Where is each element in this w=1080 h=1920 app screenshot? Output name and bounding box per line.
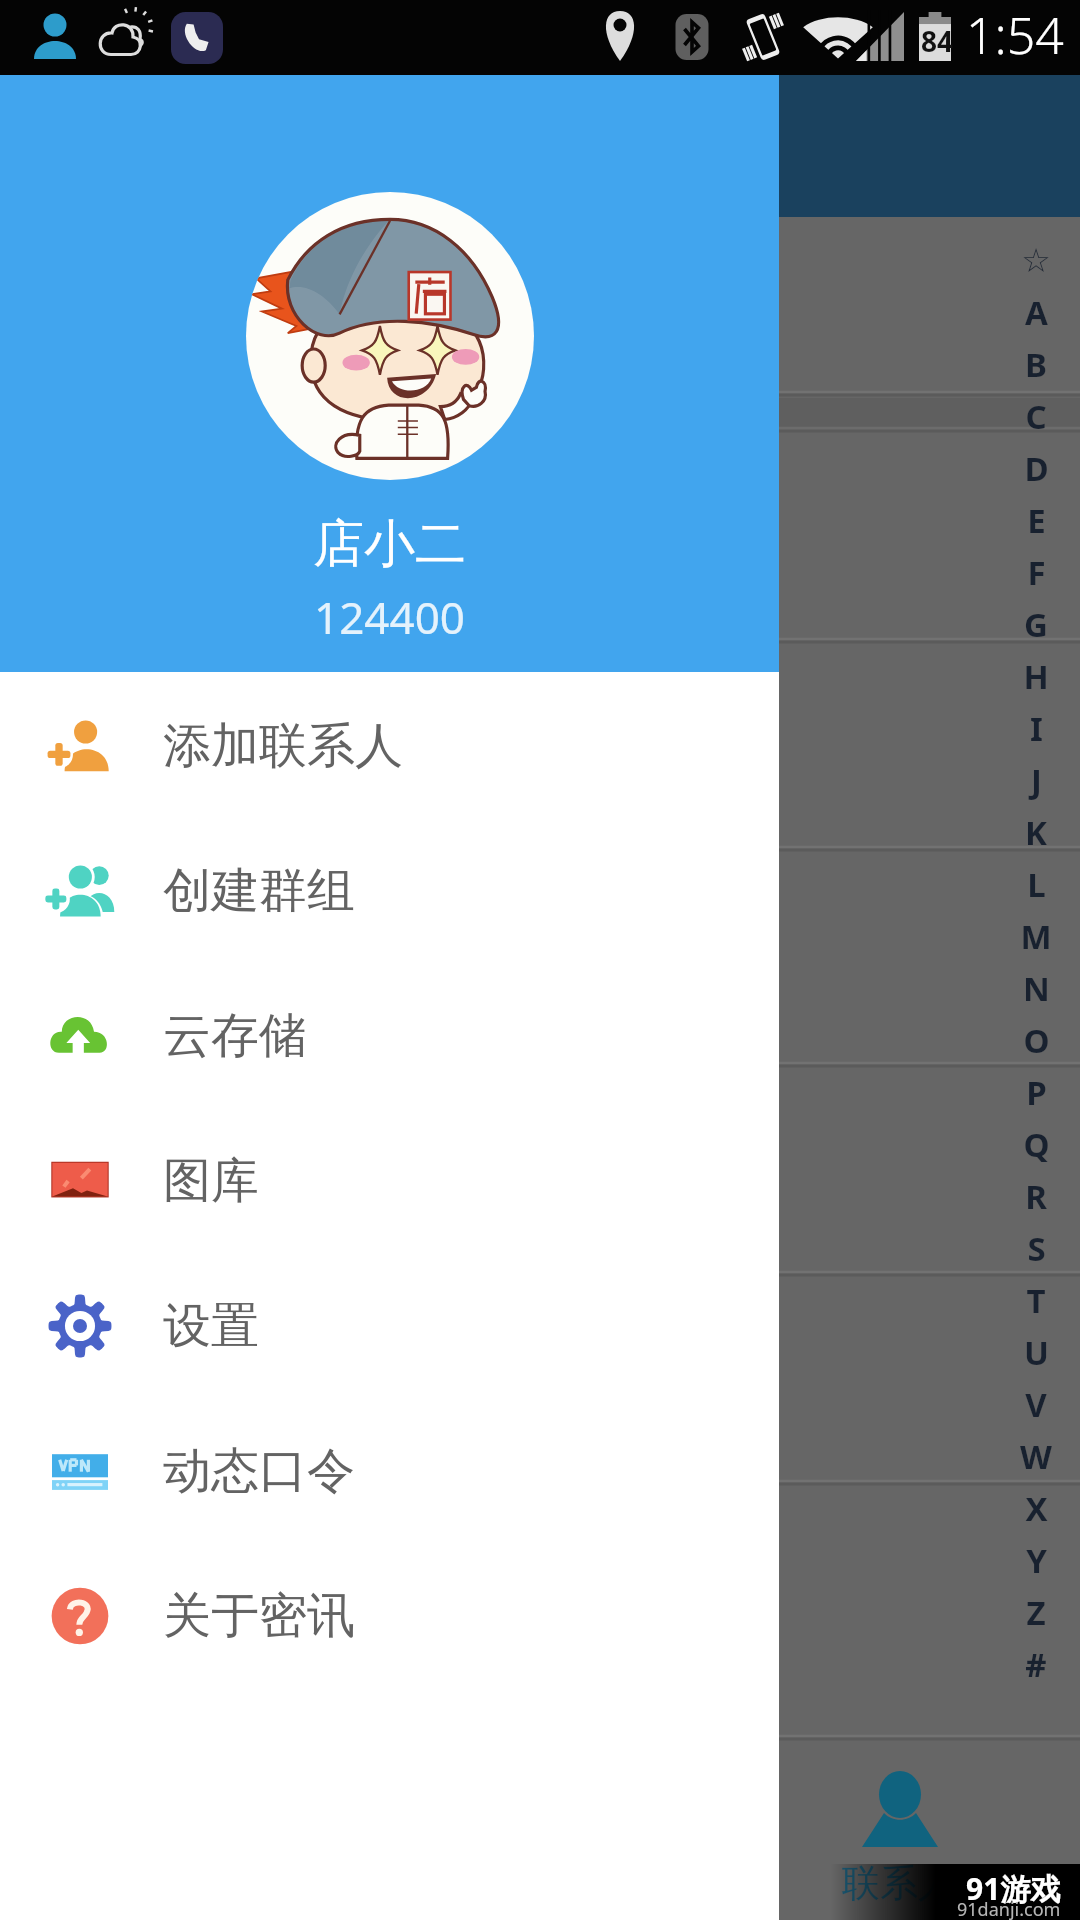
button[interactable]: T [992, 1274, 1080, 1326]
staticText: Z [1026, 1590, 1046, 1635]
button[interactable]: 关于密讯 [0, 1543, 779, 1688]
button[interactable]: U [992, 1326, 1080, 1378]
staticText: 动态口令 [163, 1441, 355, 1501]
staticText: F [1027, 550, 1046, 595]
staticText: P [1026, 1070, 1047, 1115]
button[interactable]: # [992, 1638, 1080, 1690]
button[interactable]: Q [992, 1118, 1080, 1170]
staticText: V [1025, 1382, 1047, 1427]
staticText: 联系人 [842, 1859, 956, 1907]
button[interactable]: H [992, 650, 1080, 702]
button[interactable]: 创建群组 [0, 818, 779, 963]
staticText: # [1025, 1642, 1047, 1687]
staticText: R [1025, 1174, 1047, 1219]
button[interactable]: L [992, 858, 1080, 910]
button[interactable]: 联系人 [0, 1738, 1080, 1920]
staticText: I [1030, 706, 1043, 751]
staticText: 添加联系人 [163, 716, 403, 776]
button[interactable]: J [992, 754, 1080, 806]
button[interactable]: A [992, 286, 1080, 338]
staticText: 91游戏 [966, 1868, 1061, 1909]
button[interactable]: F [992, 546, 1080, 598]
button[interactable]: Z [992, 1586, 1080, 1638]
staticText: 91danji.com [957, 1897, 1061, 1920]
staticText: 1:54 [966, 1, 1064, 69]
button[interactable]: 设置 [0, 1253, 779, 1398]
staticText: 设置 [163, 1296, 259, 1356]
button[interactable]: G [992, 598, 1080, 650]
button[interactable]: 图库 [0, 1108, 779, 1253]
staticText: ☆ [1021, 241, 1051, 279]
staticText: E [1027, 498, 1046, 543]
button[interactable]: 动态口令 [0, 1398, 779, 1543]
button[interactable]: I [992, 702, 1080, 754]
staticText: 84 [921, 22, 954, 60]
staticText: B [1025, 342, 1047, 387]
button[interactable]: B [992, 338, 1080, 390]
button[interactable]: V [992, 1378, 1080, 1430]
staticText: A [1025, 290, 1048, 335]
button[interactable]: C [992, 390, 1080, 442]
button[interactable]: P [992, 1066, 1080, 1118]
staticText: H [1023, 654, 1049, 699]
staticText: C [1025, 394, 1047, 439]
button[interactable]: O [992, 1014, 1080, 1066]
staticText: K [1025, 810, 1047, 855]
button[interactable]: 添加联系人 [0, 673, 779, 818]
staticText: 关于密讯 [163, 1586, 355, 1646]
staticText: 创建群组 [163, 861, 355, 921]
button[interactable]: 店小二 [0, 75, 779, 672]
button[interactable]: 云存储 [0, 963, 779, 1108]
button[interactable]: M [992, 910, 1080, 962]
staticText: W [1020, 1434, 1052, 1479]
button[interactable]: W [992, 1430, 1080, 1482]
button[interactable]: D [992, 442, 1080, 494]
button[interactable]: N [992, 962, 1080, 1014]
button[interactable]: E [992, 494, 1080, 546]
staticText: G [1024, 602, 1048, 647]
staticText: 云存储 [163, 1006, 307, 1066]
button[interactable]: R [992, 1170, 1080, 1222]
staticText: Y [1026, 1538, 1047, 1583]
staticText: N [1023, 966, 1050, 1011]
staticText: S [1027, 1226, 1046, 1271]
staticText: M [1020, 914, 1052, 959]
button[interactable]: S [992, 1222, 1080, 1274]
staticText: D [1024, 446, 1049, 491]
staticText: X [1025, 1486, 1048, 1531]
staticText: J [1031, 758, 1042, 803]
staticText: 图库 [163, 1151, 259, 1211]
button[interactable]: Y [992, 1534, 1080, 1586]
staticText: T [1026, 1278, 1046, 1323]
staticText: L [1027, 862, 1046, 907]
button[interactable]: X [992, 1482, 1080, 1534]
staticText: 店小二 [313, 512, 466, 576]
staticText: Q [1023, 1122, 1050, 1167]
staticText: U [1024, 1330, 1049, 1375]
staticText: 124400 [314, 587, 466, 647]
button[interactable]: K [992, 806, 1080, 858]
staticText: O [1023, 1018, 1050, 1063]
button[interactable]: ☆ [992, 234, 1080, 286]
